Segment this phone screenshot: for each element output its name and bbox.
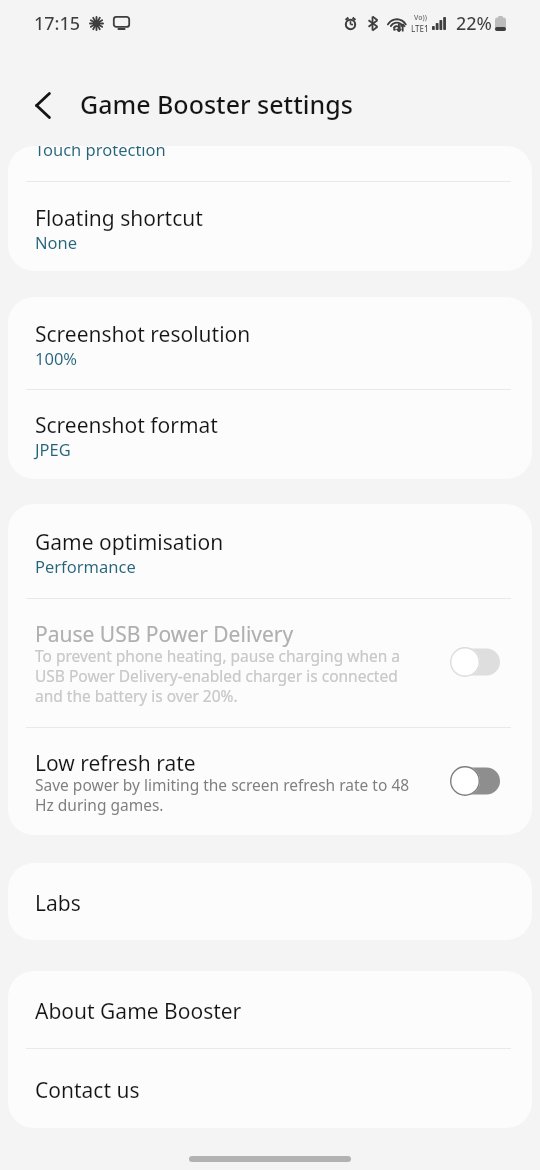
button[interactable]: Screenshot format xyxy=(8,390,532,479)
staticText: Floating shortcut xyxy=(35,204,203,233)
staticText: Screenshot format xyxy=(35,411,218,440)
staticText: Low refresh rate xyxy=(35,749,196,778)
staticText: 17:15 xyxy=(34,11,81,36)
staticText: Pause USB Power Delivery xyxy=(35,620,294,649)
staticText: LTE1 xyxy=(411,23,429,34)
button[interactable]: Pause USB Power Delivery toggle, off xyxy=(450,647,500,677)
button[interactable]: Screenshot resolution xyxy=(8,297,532,389)
button[interactable]: Contact us xyxy=(8,1049,532,1128)
button[interactable]: Navigate up xyxy=(23,85,63,125)
staticText: Labs xyxy=(35,889,81,918)
staticText: Save power by limiting the screen refres… xyxy=(35,775,413,815)
button[interactable]: Low refresh rate toggle, off xyxy=(450,766,500,796)
staticText: Game optimisation xyxy=(35,528,224,557)
staticText: None xyxy=(35,231,78,253)
staticText: About Game Booster xyxy=(35,997,242,1026)
staticText: JPEG xyxy=(35,438,71,460)
button[interactable]: About Game Booster xyxy=(8,971,532,1048)
staticText: Game Booster settings xyxy=(80,87,353,121)
staticText: Screenshot resolution xyxy=(35,320,251,349)
button[interactable]: Screenshot quality xyxy=(8,146,532,181)
staticText: Contact us xyxy=(35,1076,140,1105)
staticText: Touch protection xyxy=(35,146,166,160)
button[interactable]: Pause USB Power Delivery xyxy=(8,599,532,727)
staticText: 100% xyxy=(35,347,78,369)
button[interactable]: Game optimisation xyxy=(8,504,532,598)
button[interactable]: Labs xyxy=(8,863,532,940)
staticText: 22% xyxy=(456,11,492,36)
staticText: Vo)) xyxy=(414,13,427,23)
staticText: To prevent phone heating, pause charging… xyxy=(35,646,413,706)
staticText: Performance xyxy=(35,555,136,577)
button[interactable]: Floating shortcut xyxy=(8,182,532,271)
button[interactable]: Low refresh rate xyxy=(8,728,532,835)
